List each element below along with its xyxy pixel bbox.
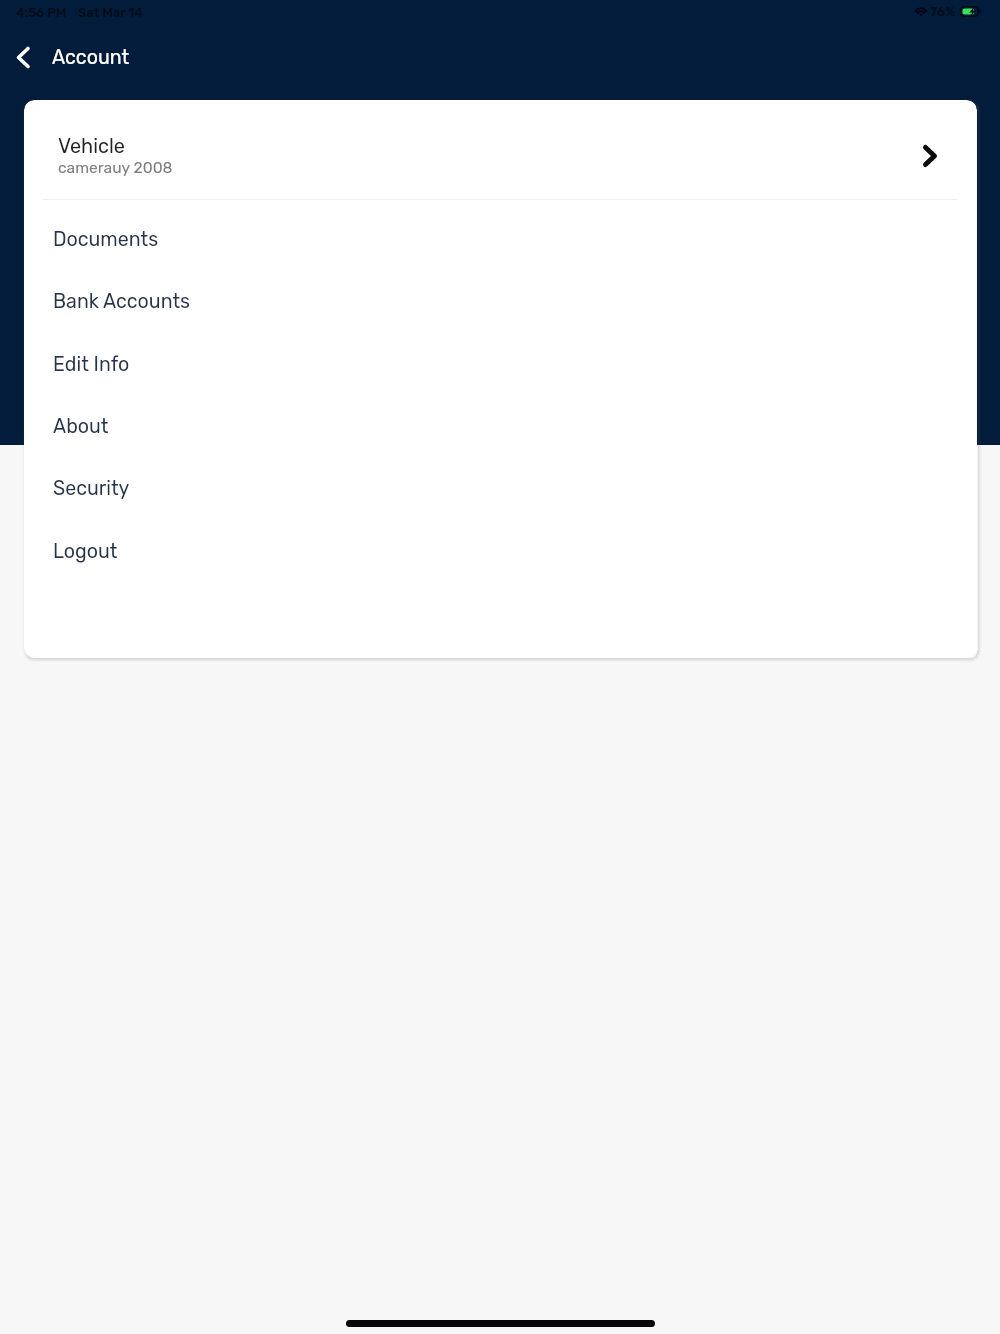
staticText: About bbox=[53, 415, 109, 438]
button[interactable]: Bank Accounts bbox=[24, 273, 977, 335]
button[interactable]: Back bbox=[7, 41, 39, 73]
staticText: Account bbox=[52, 46, 130, 69]
button[interactable]: About bbox=[24, 398, 977, 460]
staticText: Sat Mar 14 bbox=[78, 5, 143, 20]
staticText: 76% bbox=[930, 4, 956, 19]
other: Battery 76 percent, charging bbox=[960, 6, 981, 17]
button[interactable]: Security bbox=[24, 460, 977, 522]
staticText: Edit Info bbox=[53, 353, 130, 376]
button[interactable]: Vehicle bbox=[24, 100, 977, 199]
staticText: Vehicle bbox=[58, 134, 125, 158]
staticText: Documents bbox=[53, 228, 159, 251]
staticText: Security bbox=[53, 477, 130, 500]
staticText: Bank Accounts bbox=[53, 290, 191, 313]
button[interactable]: Edit Info bbox=[24, 336, 977, 398]
staticText: Logout bbox=[53, 540, 118, 563]
button[interactable]: Documents bbox=[24, 211, 977, 273]
other: Wi-Fi signal bbox=[914, 6, 928, 17]
staticText: camerauy 2008 bbox=[58, 158, 173, 176]
staticText: 4:56 PM bbox=[16, 5, 67, 20]
button[interactable]: Logout bbox=[24, 523, 977, 585]
